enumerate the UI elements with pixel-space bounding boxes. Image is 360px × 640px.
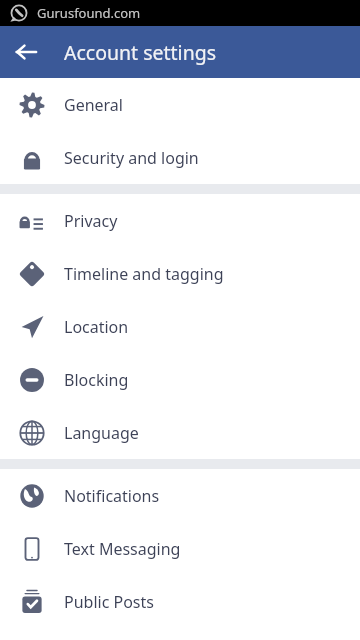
- button[interactable]: Text Messaging: [0, 522, 360, 575]
- button[interactable]: Public Posts: [0, 575, 360, 628]
- staticText: General: [64, 94, 123, 116]
- button[interactable]: Language: [0, 406, 360, 459]
- staticText: Privacy: [64, 210, 118, 232]
- button[interactable]: Security and login: [0, 131, 360, 184]
- button[interactable]: Back: [0, 26, 52, 78]
- button[interactable]: Location: [0, 300, 360, 353]
- staticText: Account settings: [64, 39, 217, 66]
- staticText: Notifications: [64, 485, 160, 507]
- button[interactable]: General: [0, 78, 360, 131]
- button[interactable]: Privacy: [0, 194, 360, 247]
- staticText: Security and login: [64, 147, 199, 169]
- staticText: Text Messaging: [64, 538, 181, 560]
- button[interactable]: Blocking: [0, 353, 360, 406]
- staticText: Timeline and tagging: [64, 263, 224, 285]
- staticText: Blocking: [64, 369, 129, 391]
- staticText: Gurusfound.com: [37, 4, 141, 22]
- staticText: Location: [64, 316, 129, 338]
- button[interactable]: Timeline and tagging: [0, 247, 360, 300]
- staticText: Public Posts: [64, 591, 154, 613]
- button[interactable]: Notifications: [0, 469, 360, 522]
- staticText: Language: [64, 422, 139, 444]
